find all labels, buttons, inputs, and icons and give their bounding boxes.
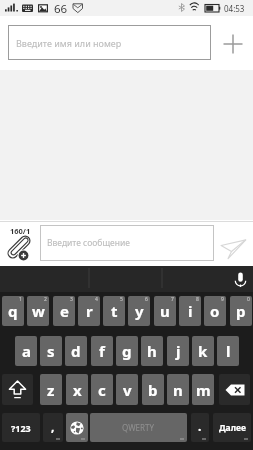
staticText: q — [8, 301, 18, 321]
staticText: 9 — [221, 296, 224, 303]
staticText: QWERTY — [122, 422, 155, 433]
button[interactable]: Shift — [2, 374, 33, 405]
button[interactable]: p — [230, 296, 252, 326]
button[interactable]: l — [217, 336, 239, 366]
button[interactable]: b — [142, 374, 164, 405]
staticText: . — [198, 418, 202, 434]
staticText: 3 — [70, 296, 73, 303]
staticText: 7 — [171, 296, 174, 303]
button[interactable]: n — [167, 374, 189, 405]
staticText: 5 — [120, 296, 123, 303]
staticText: z — [47, 380, 55, 400]
staticText: r — [86, 301, 93, 321]
button[interactable]: , — [43, 413, 63, 442]
button[interactable]: u — [154, 296, 176, 326]
button[interactable]: Send message — [219, 236, 249, 266]
button[interactable]: Далее — [213, 413, 251, 442]
button[interactable]: o — [204, 296, 226, 326]
staticText: x — [73, 380, 82, 400]
button[interactable]: Space — [90, 413, 187, 442]
staticText: 04:53 — [224, 3, 245, 14]
staticText: 0 — [247, 296, 250, 303]
button[interactable]: k — [192, 336, 214, 366]
button[interactable]: x — [66, 374, 88, 405]
staticText: f — [99, 341, 105, 361]
staticText: o — [210, 301, 220, 321]
button[interactable]: c — [91, 374, 113, 405]
staticText: g — [122, 341, 132, 361]
staticText: Далее — [219, 422, 246, 434]
staticText: 1 — [19, 296, 22, 303]
button[interactable]: e — [53, 296, 75, 326]
button[interactable]: i — [179, 296, 201, 326]
staticText: s — [47, 341, 55, 361]
staticText: y — [135, 301, 144, 321]
button[interactable]: Введите имя или номер — [8, 25, 211, 60]
staticText: a — [22, 341, 31, 361]
staticText: , — [51, 418, 55, 434]
button[interactable]: Введите сообщение — [40, 225, 214, 261]
staticText: Введите имя или номер — [16, 37, 122, 49]
button[interactable]: r — [78, 296, 100, 326]
button[interactable]: t — [103, 296, 125, 326]
staticText: h — [147, 341, 157, 361]
button[interactable]: q — [2, 296, 24, 326]
staticText: 6 — [145, 296, 148, 303]
staticText: u — [160, 301, 170, 321]
staticText: Введите сообщение — [47, 237, 130, 249]
staticText: e — [60, 301, 69, 321]
button[interactable]: Change keyboard language — [66, 413, 88, 442]
button[interactable]: y — [128, 296, 150, 326]
staticText: c — [98, 380, 106, 400]
staticText: 66 — [54, 1, 68, 17]
button[interactable]: Attach file — [6, 235, 32, 261]
staticText: l — [226, 341, 231, 361]
staticText: b — [148, 380, 158, 400]
button[interactable]: a — [15, 336, 37, 366]
button[interactable]: . — [191, 413, 209, 442]
button[interactable]: Add recipient — [219, 30, 247, 58]
staticText: k — [198, 341, 208, 361]
button[interactable]: m — [192, 374, 214, 405]
button[interactable]: s — [40, 336, 62, 366]
button[interactable]: w — [27, 296, 49, 326]
button[interactable]: Voice input — [231, 270, 250, 289]
staticText: 2 — [44, 296, 47, 303]
staticText: 160/1 — [10, 226, 31, 236]
staticText: 8 — [196, 296, 199, 303]
button[interactable]: v — [116, 374, 138, 405]
staticText: d — [71, 341, 81, 361]
staticText: v — [123, 380, 132, 400]
button[interactable]: f — [91, 336, 113, 366]
button[interactable]: Backspace — [219, 374, 250, 405]
staticText: p — [236, 301, 246, 321]
staticText: n — [173, 380, 183, 400]
staticText: m — [196, 380, 211, 400]
button[interactable]: g — [116, 336, 138, 366]
staticText: i — [188, 301, 193, 321]
button[interactable]: h — [141, 336, 163, 366]
staticText: w — [32, 301, 45, 321]
button[interactable]: z — [40, 374, 62, 405]
staticText: ?123 — [11, 422, 31, 434]
staticText: j — [176, 341, 181, 361]
button[interactable]: j — [167, 336, 189, 366]
button[interactable]: ?123 — [2, 413, 40, 442]
staticText: 4 — [95, 296, 98, 303]
button[interactable]: d — [65, 336, 87, 366]
staticText: t — [111, 301, 118, 321]
